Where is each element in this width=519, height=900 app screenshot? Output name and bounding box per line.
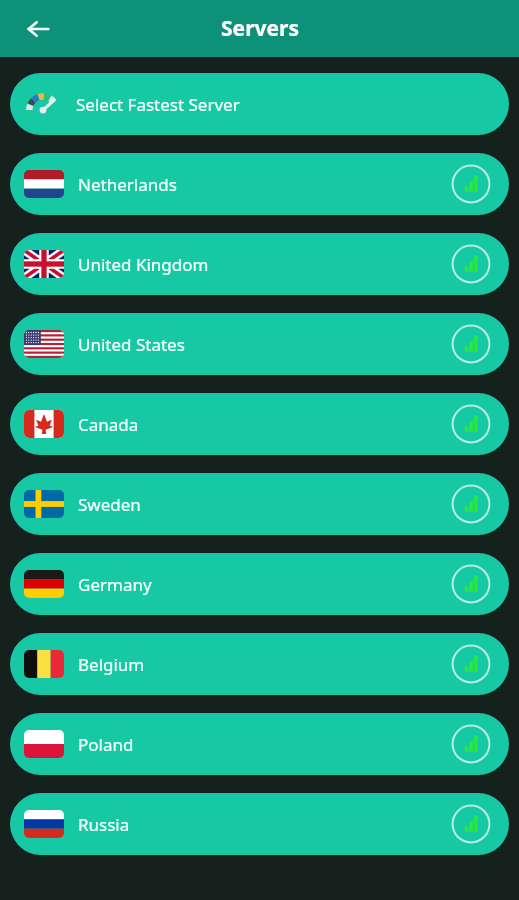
button[interactable]: Canada xyxy=(10,393,509,455)
button[interactable]: Netherlands xyxy=(10,153,509,215)
button[interactable]: United States xyxy=(10,313,509,375)
staticText: Select Fastest Server xyxy=(76,93,240,116)
button[interactable]: Back xyxy=(14,5,62,53)
staticText: Germany xyxy=(78,573,152,596)
button[interactable]: Russia xyxy=(10,793,509,855)
staticText: Netherlands xyxy=(78,173,177,196)
button[interactable]: Belgium xyxy=(10,633,509,695)
button[interactable]: Poland xyxy=(10,713,509,775)
staticText: Canada xyxy=(78,413,139,436)
button[interactable]: Sweden xyxy=(10,473,509,535)
staticText: Poland xyxy=(78,733,134,756)
button[interactable]: United Kingdom xyxy=(10,233,509,295)
staticText: Russia xyxy=(78,813,130,836)
button[interactable]: Germany xyxy=(10,553,509,615)
button[interactable]: Select Fastest Server xyxy=(10,73,509,135)
staticText: Sweden xyxy=(78,493,141,516)
staticText: United Kingdom xyxy=(78,253,209,276)
staticText: Servers xyxy=(221,14,299,43)
staticText: Belgium xyxy=(78,653,145,676)
staticText: United States xyxy=(78,333,185,356)
